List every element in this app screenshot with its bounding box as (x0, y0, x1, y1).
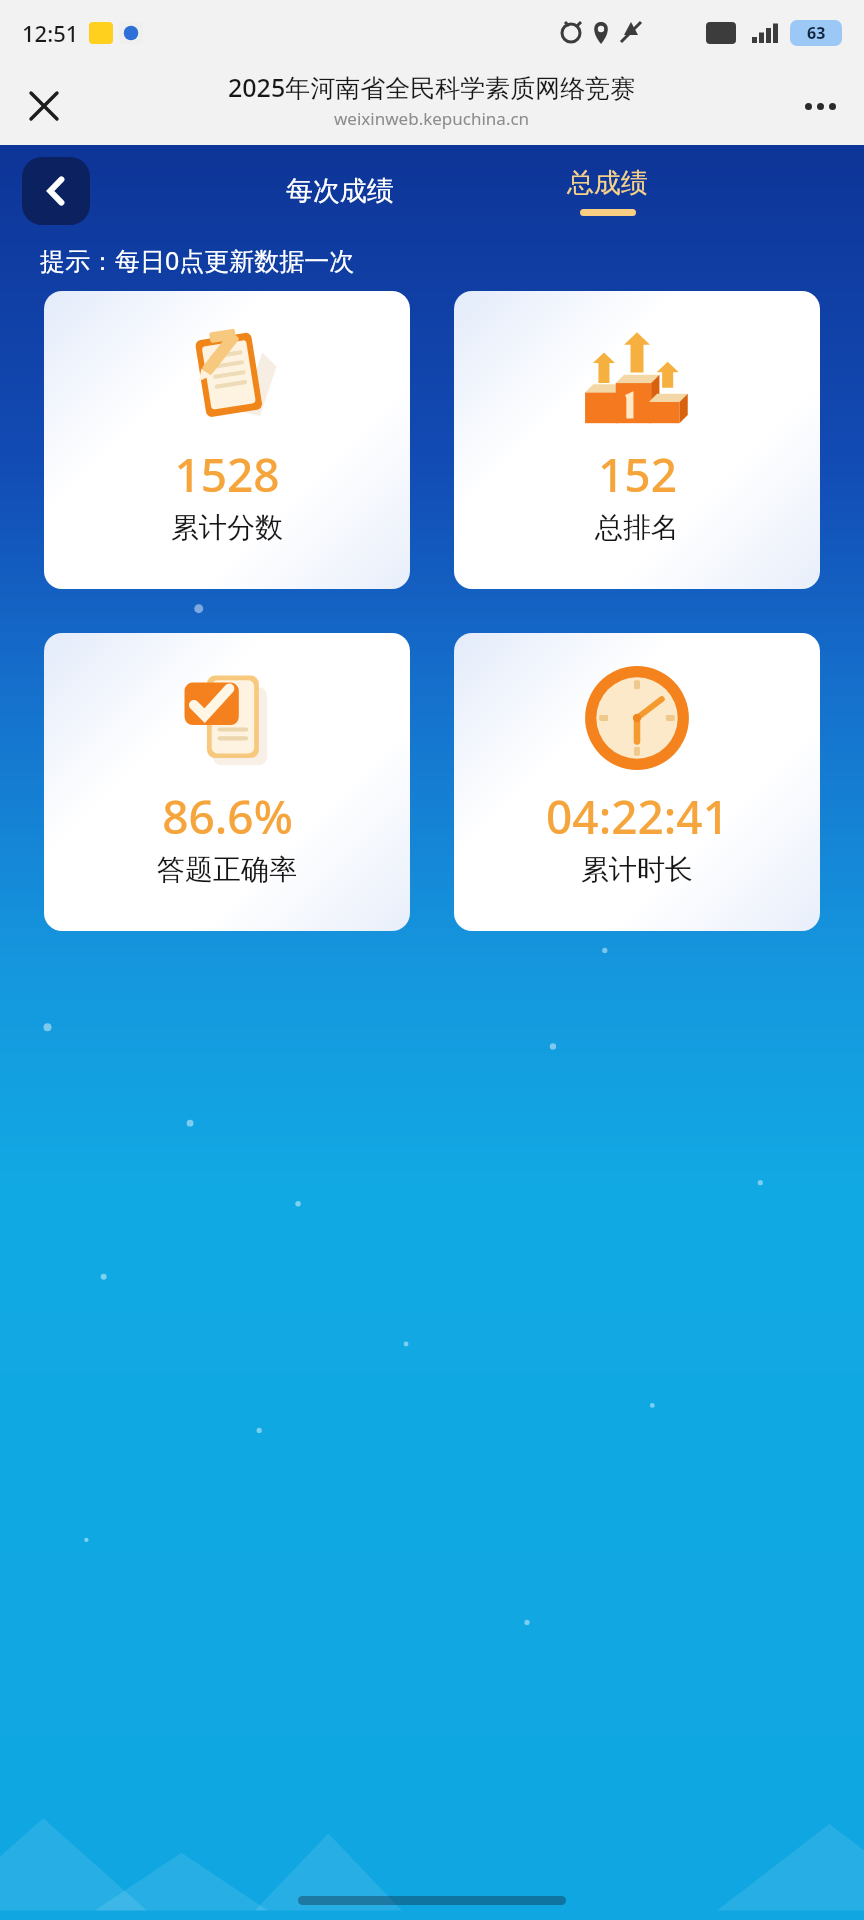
button[interactable]: More options (792, 78, 848, 134)
staticText: 12:51 (22, 18, 79, 48)
staticText: 总成绩 (567, 166, 648, 200)
button[interactable]: 每次成绩 (268, 166, 412, 216)
button[interactable]: Back (22, 157, 90, 225)
staticText: 86.6% (162, 785, 293, 848)
staticText: 152 (598, 443, 677, 506)
staticText: 累计时长 (581, 852, 693, 887)
staticText: 04:22:41 (546, 785, 729, 848)
button[interactable]: 1528 (44, 291, 410, 589)
button[interactable]: 86.6% (44, 633, 410, 931)
staticText: 累计分数 (171, 510, 283, 545)
button[interactable]: 152 (454, 291, 820, 589)
staticText: 2025年河南省全民科学素质网络竞赛 (228, 70, 636, 104)
button[interactable]: 04:22:41 (454, 633, 820, 931)
button[interactable]: 总成绩 (549, 162, 666, 220)
staticText: 1528 (174, 443, 280, 506)
staticText: 每次成绩 (286, 174, 394, 208)
staticText: 提示：每日0点更新数据一次 (40, 243, 355, 277)
staticText: 答题正确率 (157, 852, 297, 887)
button[interactable]: Close (16, 78, 72, 134)
staticText: weixinweb.kepuchina.cn (334, 107, 530, 130)
staticText: 总排名 (595, 510, 679, 545)
staticText: 63 (807, 22, 826, 44)
